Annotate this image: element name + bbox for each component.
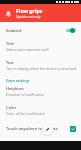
button[interactable]: Enabled bbox=[0, 24, 81, 36]
staticText: Heighten bbox=[6, 86, 24, 91]
staticText: Extra settings bbox=[6, 78, 30, 83]
staticText: Update velocity bbox=[16, 14, 41, 19]
button[interactable]: Heighten bbox=[0, 84, 81, 99]
staticText: Title bbox=[6, 41, 15, 46]
button[interactable]: Toggle update velocity bbox=[65, 26, 77, 34]
staticText: Duration of notification bbox=[6, 92, 45, 97]
staticText: Flow grips bbox=[16, 7, 43, 14]
staticText: Text in display when the device is unloc… bbox=[6, 66, 77, 71]
staticText: Text bbox=[6, 60, 14, 65]
button[interactable]: Title bbox=[0, 39, 81, 54]
button[interactable]: Touch anywhere to dismiss bbox=[0, 122, 81, 135]
staticText: Now most important stuff bbox=[6, 47, 49, 52]
staticText: Touch anywhere to dismiss bbox=[6, 126, 58, 131]
staticText: Color of the notification bbox=[6, 111, 45, 116]
staticText: Enabled bbox=[6, 28, 22, 33]
button[interactable]: App icon bbox=[0, 4, 81, 22]
other: App icon bbox=[4, 9, 13, 18]
button[interactable]: Color bbox=[0, 103, 81, 118]
button[interactable]: Edit bbox=[42, 124, 53, 135]
button[interactable]: Text bbox=[0, 58, 81, 73]
button[interactable]: Touch anywhere to dismiss bbox=[68, 124, 77, 133]
staticText: Color bbox=[6, 105, 17, 110]
